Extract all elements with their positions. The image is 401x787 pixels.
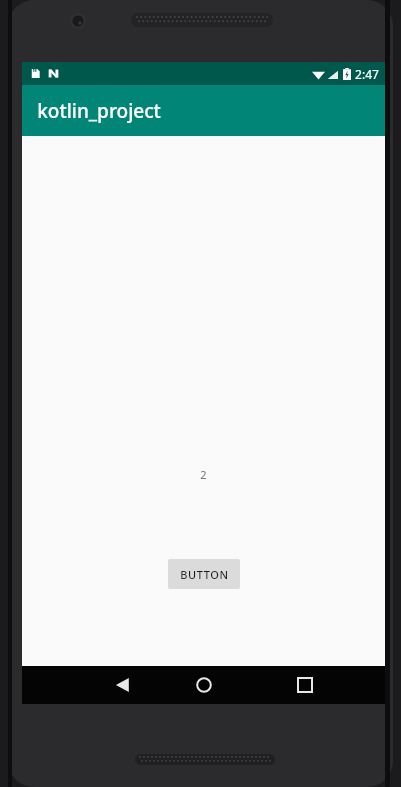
staticText: 2:47	[355, 66, 379, 82]
staticText: 2	[200, 467, 207, 482]
button[interactable]: Home	[166, 666, 242, 704]
button[interactable]: Recent apps	[267, 666, 343, 704]
button[interactable]: BUTTON	[168, 559, 240, 589]
staticText: kotlin_project	[37, 98, 161, 124]
staticText: BUTTON	[180, 567, 229, 582]
button[interactable]: Back	[84, 666, 160, 704]
